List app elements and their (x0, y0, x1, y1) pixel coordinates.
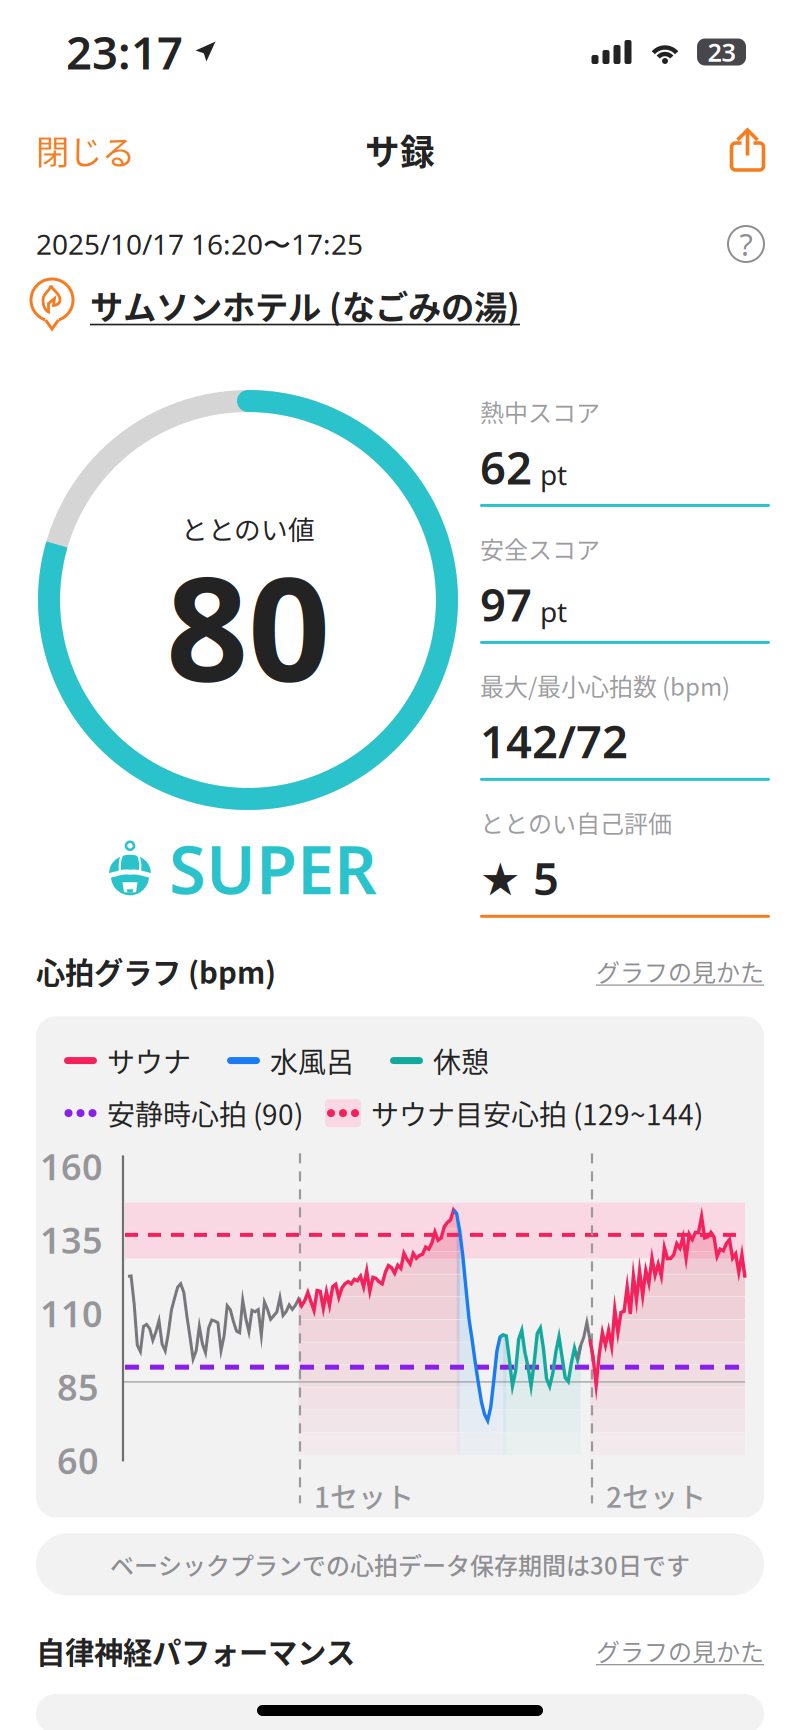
staticText: 自律神経パフォーマンス (36, 1629, 355, 1672)
staticText: 2セット (606, 1475, 706, 1516)
staticText: 160 (40, 1142, 103, 1190)
staticText: ★ 5 (480, 848, 559, 908)
staticText: 23:17 (66, 22, 183, 82)
button[interactable]: グラフの見かた (596, 1633, 764, 1668)
staticText: 心拍グラフ (bpm) (36, 950, 276, 992)
staticText: サ録 (365, 125, 435, 175)
staticText: ? (739, 224, 752, 264)
button[interactable]: 共有 (715, 123, 766, 176)
staticText: 97 (480, 574, 532, 634)
button[interactable]: ヘルプ (724, 222, 768, 266)
staticText: 安静時心拍 (90) (107, 1093, 303, 1133)
staticText: SUPER (169, 824, 377, 912)
staticText: 23 (707, 35, 735, 69)
staticText: 閉じる (36, 126, 135, 174)
staticText: サウナ目安心拍 (129~144) (371, 1093, 703, 1133)
staticText: pt (540, 456, 567, 493)
staticText: ベーシックプランでの心拍データ保存期間は30日です (110, 1547, 690, 1582)
staticText: サウナ (107, 1040, 191, 1081)
staticText: 安全スコア (480, 531, 600, 566)
staticText: 110 (40, 1289, 103, 1337)
staticText: ととのい自己評価 (480, 805, 672, 840)
staticText: 休憩 (433, 1040, 489, 1081)
button[interactable]: 閉じる (36, 114, 149, 186)
staticText: 最大/最小心拍数 (bpm) (480, 668, 730, 703)
staticText: 2025/10/17 16:20〜17:25 (36, 225, 363, 263)
staticText: サムソンホテル (なごみの湯) (90, 281, 520, 329)
staticText: pt (540, 593, 567, 630)
button[interactable]: グラフの見かた (596, 954, 764, 988)
staticText: 85 (57, 1363, 99, 1411)
button[interactable]: サムソンホテル (なごみの湯) (0, 276, 800, 334)
staticText: 1セット (314, 1475, 414, 1516)
staticText: 135 (40, 1216, 103, 1264)
staticText: 142/72 (480, 711, 628, 771)
staticText: 62 (480, 437, 532, 497)
staticText: 水風呂 (270, 1040, 354, 1081)
staticText: 60 (57, 1436, 99, 1484)
staticText: 80 (166, 530, 330, 722)
staticText: ととのい値 (181, 509, 315, 547)
staticText: グラフの見かた (596, 954, 764, 988)
staticText: グラフの見かた (596, 1633, 764, 1668)
staticText: 熱中スコア (480, 394, 600, 429)
